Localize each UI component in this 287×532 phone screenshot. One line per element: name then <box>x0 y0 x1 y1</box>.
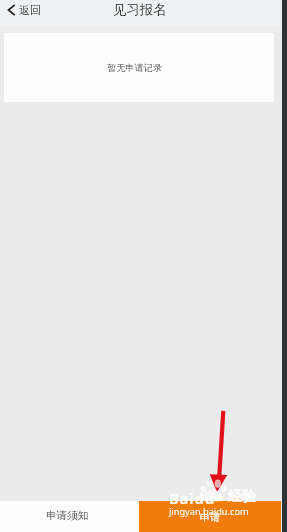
staticText: 经验 <box>228 488 256 506</box>
button[interactable]: 暂无申请记录 <box>4 33 274 102</box>
button[interactable]: 返回 <box>0 0 51 27</box>
staticText: 见习报名 <box>113 1 167 18</box>
staticText: 返回 <box>19 3 41 17</box>
button[interactable]: 申请须知 <box>0 501 139 532</box>
staticText: 申请 <box>200 511 221 524</box>
button[interactable]: 申请 <box>139 501 281 532</box>
staticText: 申请须知 <box>46 509 89 522</box>
staticText: jingyan.baidu.com <box>169 505 249 518</box>
staticText: 暂无申请记录 <box>107 62 163 74</box>
staticText: Baidu <box>169 488 216 508</box>
